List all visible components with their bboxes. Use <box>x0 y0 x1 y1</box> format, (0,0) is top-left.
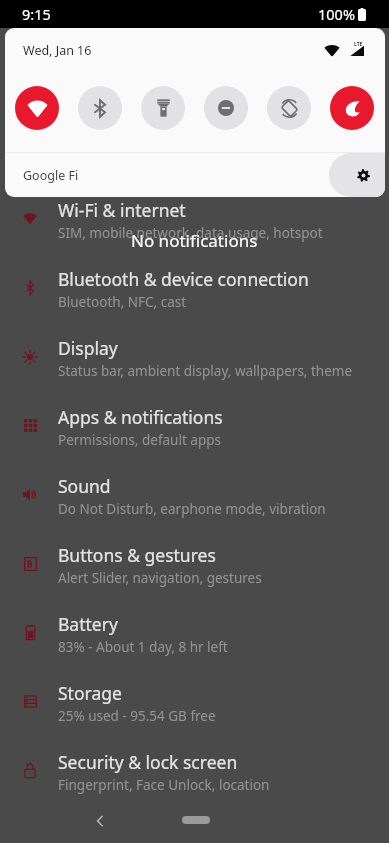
button[interactable]: Apps & notifications <box>0 392 389 461</box>
staticText: Wed, Jan 16 <box>23 42 92 59</box>
button[interactable]: Bluetooth & device connection <box>0 254 389 323</box>
staticText: Apps & notifications <box>58 405 223 429</box>
button[interactable]: Sound <box>0 461 389 530</box>
staticText: Bluetooth, NFC, cast <box>58 293 187 311</box>
staticText: LTE <box>354 41 363 48</box>
button[interactable]: Do not disturb <box>204 86 248 130</box>
staticText: Buttons & gestures <box>58 543 216 567</box>
button[interactable]: Wi-Fi & internet <box>0 185 389 254</box>
staticText: Alert Slider, navigation, gestures <box>58 569 262 587</box>
button[interactable]: Wi-Fi <box>15 86 59 130</box>
staticText: 25% used - 95.54 GB free <box>58 707 216 725</box>
staticText: Google Fi <box>23 167 79 184</box>
staticText: Permissions, default apps <box>58 431 221 449</box>
button[interactable]: Back <box>85 806 115 836</box>
staticText: Security & lock screen <box>58 750 238 774</box>
staticText: Display <box>58 336 118 360</box>
staticText: Sound <box>58 474 111 498</box>
button[interactable]: Flashlight <box>141 86 185 130</box>
staticText: Status bar, ambient display, wallpapers,… <box>58 362 353 380</box>
staticText: SIM, mobile network, data usage, hotspot <box>58 224 323 242</box>
button[interactable]: Security & lock screen <box>0 737 389 806</box>
button[interactable] <box>182 816 210 824</box>
button[interactable]: Buttons & gestures <box>0 530 389 599</box>
staticText: Battery <box>58 612 118 636</box>
button[interactable]: Storage <box>0 668 389 737</box>
button[interactable]: Settings <box>329 153 385 197</box>
staticText: No notifications <box>131 229 258 252</box>
staticText: 83% - About 1 day, 8 hr left <box>58 638 228 656</box>
button[interactable]: Night mode <box>330 86 374 130</box>
staticText: 9:15 <box>22 4 51 24</box>
button[interactable]: Display <box>0 323 389 392</box>
staticText: 100% <box>318 4 355 24</box>
button[interactable]: Auto rotate <box>267 86 311 130</box>
button[interactable]: Bluetooth <box>78 86 122 130</box>
button[interactable]: Battery <box>0 599 389 668</box>
staticText: Storage <box>58 681 122 705</box>
staticText: Wi-Fi & internet <box>58 198 186 222</box>
staticText: Fingerprint, Face Unlock, location <box>58 776 270 794</box>
staticText: Bluetooth & device connection <box>58 267 309 291</box>
staticText: Do Not Disturb, earphone mode, vibration <box>58 500 326 518</box>
